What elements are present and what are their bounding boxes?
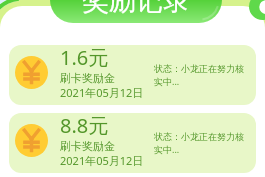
staticText: 2021年05月12日: [60, 85, 144, 100]
staticText: 刷卡奖励金: [60, 139, 115, 153]
button[interactable]: 8.8元: [9, 113, 256, 173]
staticText: 刷卡奖励金: [60, 71, 115, 85]
staticText: 状态：小龙正在努力核实中...: [154, 131, 244, 156]
staticText: 奖励记录: [82, 0, 190, 18]
staticText: 状态：小龙正在努力核实中...: [154, 63, 244, 88]
button[interactable]: Profile: [249, 0, 265, 20]
staticText: 8.8元: [60, 113, 109, 139]
staticText: 1.6元: [60, 45, 109, 71]
staticText: 2021年05月12日: [60, 153, 144, 168]
button[interactable]: 1.6元: [9, 45, 256, 105]
